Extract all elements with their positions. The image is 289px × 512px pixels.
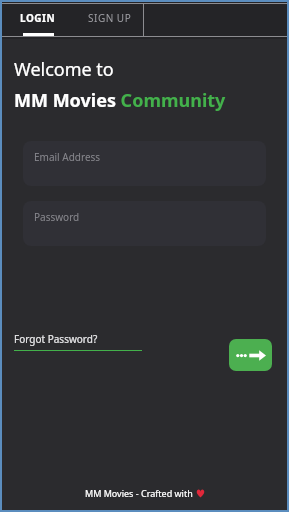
button[interactable]: SIGN UP [76,4,143,37]
button[interactable]: Submit login [229,339,272,371]
staticText: Password [34,210,80,224]
button[interactable]: Password [23,201,266,246]
staticText: MM Movies Community [14,88,226,113]
staticText: Email Address [34,150,101,164]
button[interactable]: Forgot Password? [14,332,142,351]
button[interactable]: LOGIN [0,4,76,37]
staticText: SIGN UP [88,11,132,25]
button[interactable]: Email Address [23,141,266,186]
staticText: Welcome to [14,57,114,82]
staticText: MM Movies - Crafted with [85,487,196,499]
staticText: Forgot Password? [14,332,98,346]
staticText: LOGIN [20,11,56,25]
